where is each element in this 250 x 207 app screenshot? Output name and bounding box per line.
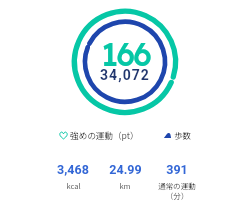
staticText: 391 bbox=[166, 162, 188, 177]
button[interactable]: 3,468 bbox=[47, 162, 99, 191]
button[interactable]: Steps bbox=[163, 129, 192, 141]
other: Steps bbox=[163, 131, 172, 140]
staticText: kcal bbox=[66, 180, 81, 191]
button[interactable]: 24.99 bbox=[99, 162, 151, 191]
staticText: 166 bbox=[101, 33, 150, 74]
staticText: 通常の運動 （分） bbox=[158, 180, 196, 201]
staticText: 歩数 bbox=[174, 129, 192, 141]
staticText: km bbox=[119, 180, 131, 191]
button[interactable]: Heart point bbox=[59, 129, 139, 141]
staticText: 強めの運動（pt） bbox=[70, 129, 139, 141]
staticText: 34,072 bbox=[100, 67, 150, 83]
other: Heart point bbox=[59, 131, 68, 140]
staticText: 24.99 bbox=[109, 162, 142, 177]
staticText: 3,468 bbox=[57, 162, 89, 177]
button[interactable]: 391 bbox=[151, 162, 203, 201]
